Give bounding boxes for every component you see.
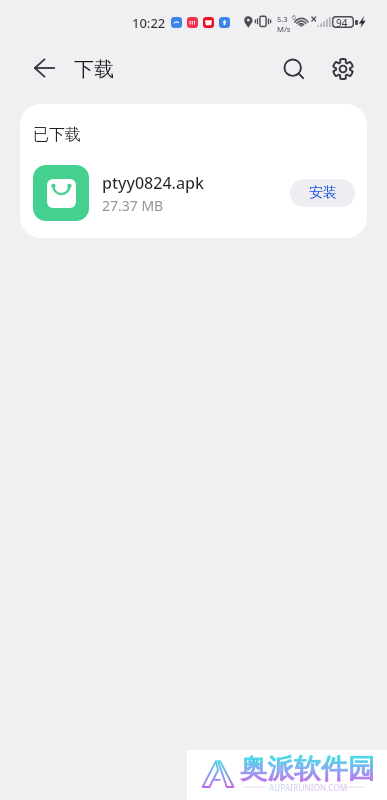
staticText: 下载: [74, 57, 114, 82]
staticText: 已下载: [33, 125, 81, 145]
staticText: 6: [292, 13, 297, 23]
staticText: 10:22: [132, 14, 166, 32]
button[interactable]: ptyy0824.apk: [20, 163, 367, 223]
staticText: 奥派软件园: [240, 752, 375, 786]
staticText: 94: [336, 16, 348, 30]
staticText: ptyy0824.apk: [102, 172, 204, 194]
button[interactable]: Settings: [326, 52, 359, 85]
staticText: AUPAIRUNION.COM: [269, 782, 348, 793]
staticText: 5.3: [277, 14, 288, 24]
staticText: 27.37 MB: [102, 196, 164, 215]
staticText: M/s: [277, 24, 291, 34]
staticText: 安装: [309, 184, 337, 202]
button[interactable]: 安装: [290, 179, 355, 207]
button[interactable]: Back: [24, 48, 64, 88]
button[interactable]: Search: [278, 53, 310, 85]
